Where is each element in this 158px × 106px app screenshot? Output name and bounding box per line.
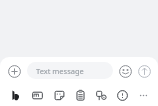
button[interactable]: Themes <box>91 85 112 105</box>
button[interactable]: Text message <box>27 62 113 79</box>
button[interactable]: GIF <box>26 85 48 105</box>
button[interactable]: More options <box>133 85 154 105</box>
button[interactable]: Send <box>135 62 153 80</box>
button[interactable]: Settings <box>112 85 133 105</box>
button[interactable]: Add attachment <box>5 62 23 80</box>
button[interactable]: Emoji <box>116 62 134 80</box>
button[interactable]: Clipboard <box>70 85 91 105</box>
button[interactable]: Stickers <box>48 85 70 105</box>
staticText: Text message <box>36 66 84 76</box>
button[interactable]: Copilot <box>4 85 26 105</box>
